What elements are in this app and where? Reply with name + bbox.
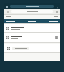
button[interactable]: Account [55, 10, 58, 13]
button[interactable] [11, 10, 53, 13]
button[interactable] [6, 24, 58, 32]
button[interactable]: More options [56, 6, 58, 8]
button[interactable]: Open document [6, 33, 58, 42]
button[interactable]: Open document [55, 36, 58, 39]
button[interactable] [12, 47, 29, 50]
button[interactable] [6, 19, 58, 23]
button[interactable]: Menu [6, 10, 9, 13]
button[interactable] [10, 5, 54, 8]
